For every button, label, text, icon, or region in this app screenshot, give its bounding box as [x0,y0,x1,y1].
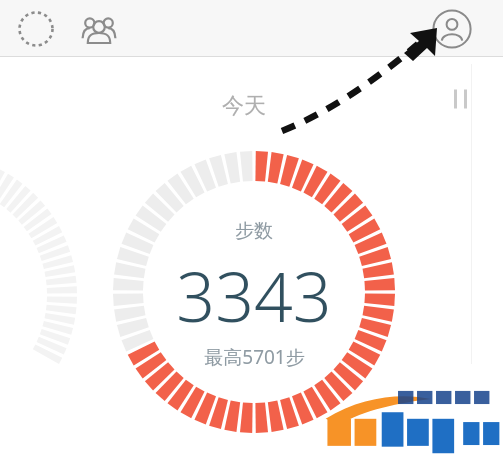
button[interactable]: Pause [450,84,476,114]
button[interactable]: Activity rings [17,10,55,48]
staticText: 今天 [222,92,266,120]
button[interactable]: Profile [432,9,472,49]
staticText: 最高5701步 [204,344,305,370]
staticText: 步数 [235,219,273,243]
button[interactable]: Friends [79,11,119,51]
button[interactable]: 步数 [113,151,395,433]
staticText: 3343 [176,249,332,342]
